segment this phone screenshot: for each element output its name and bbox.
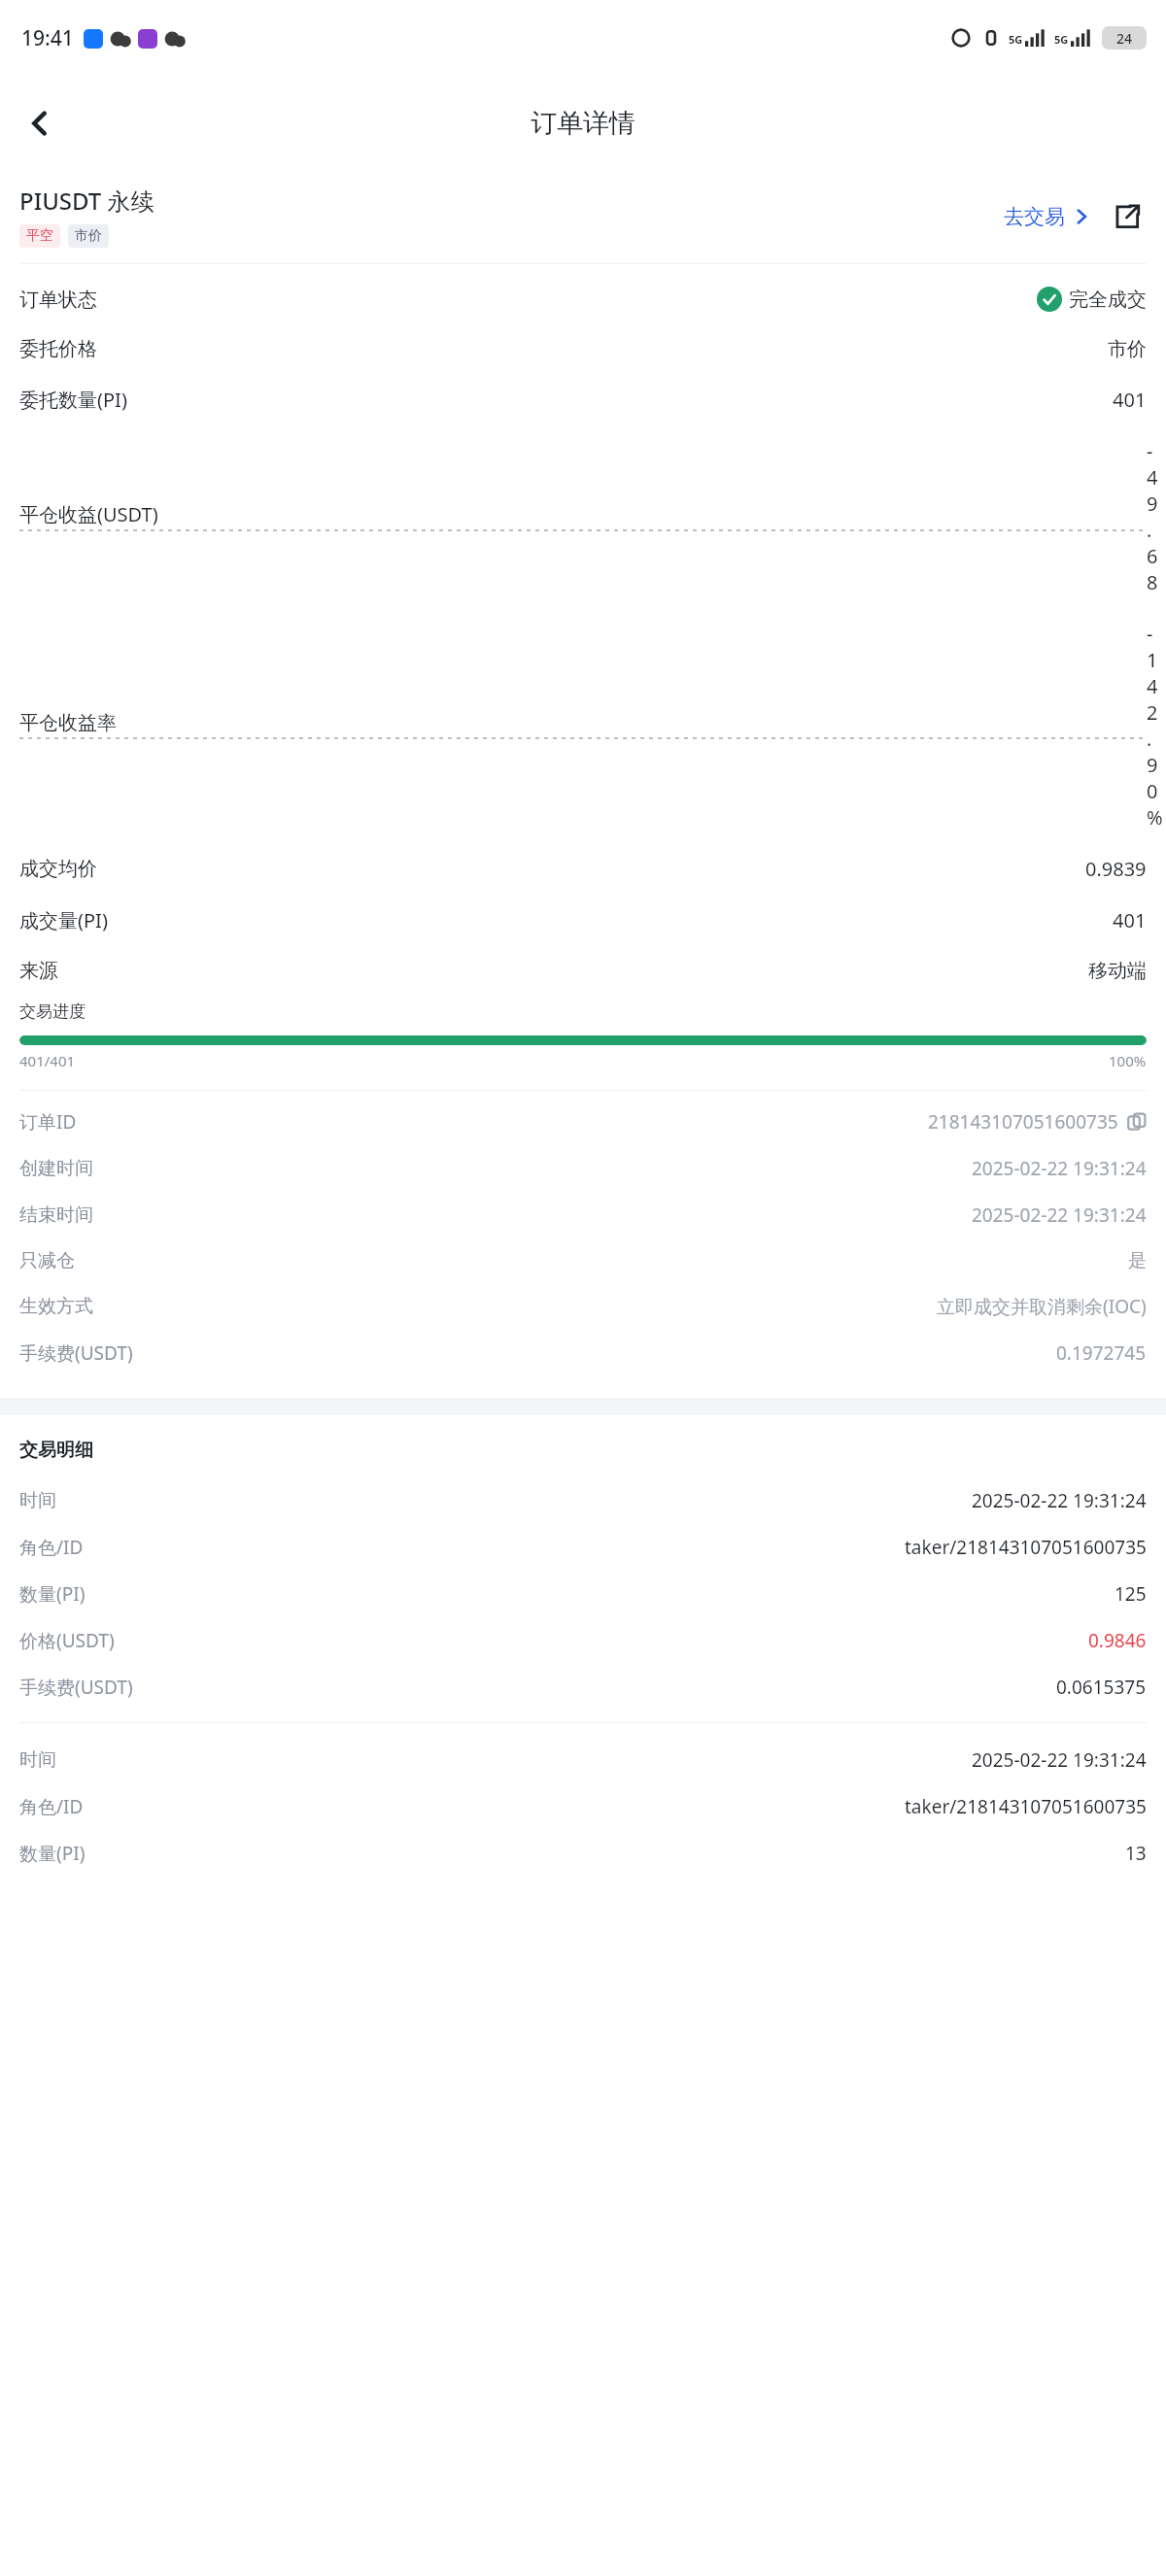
staticText: 委托数量(PI) bbox=[19, 387, 127, 413]
staticText: 401 bbox=[1113, 387, 1147, 413]
staticText: 只减仓 bbox=[19, 1249, 75, 1272]
staticText: 24 bbox=[1116, 29, 1133, 48]
staticText: 立即成交并取消剩余(IOC) bbox=[937, 1294, 1147, 1319]
staticText: 成交均价 bbox=[19, 857, 97, 881]
staticText: 平仓收益(USDT) bbox=[19, 501, 158, 527]
staticText: taker/218143107051600735 bbox=[905, 1794, 1147, 1819]
staticText: 时间 bbox=[19, 1748, 56, 1772]
staticText: 市价 bbox=[75, 227, 102, 245]
staticText: 订单ID bbox=[19, 1109, 77, 1135]
staticText: 19:41 bbox=[21, 24, 74, 52]
staticText: 来源 bbox=[19, 959, 58, 983]
staticText: PIUSDT 永续 bbox=[19, 185, 154, 217]
staticText: 生效方式 bbox=[19, 1295, 93, 1318]
staticText: 去交易 bbox=[1004, 204, 1065, 229]
staticText: 218143107051600735 bbox=[928, 1109, 1118, 1135]
staticText: 角色/ID bbox=[19, 1535, 84, 1560]
staticText: 100% bbox=[1109, 1051, 1147, 1070]
staticText: 结束时间 bbox=[19, 1203, 93, 1227]
staticText: 成交量(PI) bbox=[19, 907, 108, 933]
staticText: 角色/ID bbox=[19, 1794, 84, 1819]
staticText: 2025-02-22 19:31:24 bbox=[972, 1747, 1147, 1773]
staticText: 5G bbox=[1009, 32, 1023, 47]
button[interactable]: 生效方式 bbox=[0, 1283, 1166, 1330]
button[interactable]: 委托数量(PI) bbox=[0, 374, 1166, 425]
staticText: 数量(PI) bbox=[19, 1581, 86, 1607]
button[interactable]: 创建时间 bbox=[0, 1145, 1166, 1192]
button[interactable]: 订单状态 bbox=[0, 274, 1166, 324]
button[interactable]: Share bbox=[1108, 197, 1147, 236]
staticText: 5G bbox=[1054, 32, 1069, 47]
button[interactable]: 角色/ID bbox=[0, 1524, 1166, 1571]
button[interactable]: 只减仓 bbox=[0, 1238, 1166, 1283]
staticText: 创建时间 bbox=[19, 1157, 93, 1180]
button[interactable]: 委托价格 bbox=[0, 324, 1166, 374]
button[interactable]: 平仓收益(USDT) bbox=[0, 425, 1166, 608]
button[interactable]: 平仓收益率 bbox=[0, 608, 1166, 843]
button[interactable]: 价格(USDT) bbox=[0, 1617, 1166, 1664]
staticText: 手续费(USDT) bbox=[19, 1340, 133, 1366]
staticText: 2025-02-22 19:31:24 bbox=[972, 1156, 1147, 1181]
staticText: 401 bbox=[1113, 907, 1147, 933]
button[interactable]: 数量(PI) bbox=[0, 1830, 1166, 1877]
staticText: 订单详情 bbox=[531, 107, 635, 140]
staticText: 交易进度 bbox=[19, 1001, 86, 1022]
button[interactable]: 来源 bbox=[0, 946, 1166, 996]
staticText: 125 bbox=[1115, 1581, 1147, 1607]
button[interactable]: 角色/ID bbox=[0, 1783, 1166, 1830]
staticText: 市价 bbox=[1108, 337, 1147, 361]
button[interactable]: 结束时间 bbox=[0, 1192, 1166, 1238]
button[interactable]: 时间 bbox=[0, 1737, 1166, 1783]
staticText: 平空 bbox=[26, 227, 53, 245]
staticText: 订单状态 bbox=[19, 288, 97, 312]
staticText: 2025-02-22 19:31:24 bbox=[972, 1203, 1147, 1228]
button[interactable]: 订单ID bbox=[0, 1099, 1166, 1145]
button[interactable]: 去交易 bbox=[1004, 198, 1090, 235]
staticText: 2025-02-22 19:31:24 bbox=[972, 1488, 1147, 1513]
staticText: 0.0615375 bbox=[1056, 1675, 1147, 1700]
button[interactable]: 手续费(USDT) bbox=[0, 1330, 1166, 1376]
staticText: 价格(USDT) bbox=[19, 1628, 115, 1653]
staticText: 手续费(USDT) bbox=[19, 1675, 133, 1700]
staticText: 移动端 bbox=[1088, 959, 1147, 983]
staticText: 完全成交 bbox=[1069, 288, 1147, 312]
button[interactable]: 成交均价 bbox=[0, 843, 1166, 895]
button[interactable]: 数量(PI) bbox=[0, 1571, 1166, 1617]
staticText: 委托价格 bbox=[19, 337, 97, 361]
staticText: 交易明细 bbox=[19, 1439, 93, 1462]
button[interactable]: 成交量(PI) bbox=[0, 895, 1166, 946]
staticText: 数量(PI) bbox=[19, 1841, 86, 1866]
button[interactable]: 手续费(USDT) bbox=[0, 1664, 1166, 1711]
staticText: 401/401 bbox=[19, 1051, 76, 1070]
staticText: 平仓收益率 bbox=[19, 711, 117, 735]
staticText: taker/218143107051600735 bbox=[905, 1535, 1147, 1560]
staticText: 13 bbox=[1125, 1841, 1147, 1866]
staticText: 0.9839 bbox=[1085, 856, 1147, 882]
button[interactable]: Back bbox=[12, 95, 68, 152]
staticText: 0.1972745 bbox=[1056, 1340, 1147, 1366]
staticText: 0.9846 bbox=[1088, 1628, 1147, 1653]
staticText: 时间 bbox=[19, 1489, 56, 1512]
staticText: 是 bbox=[1128, 1249, 1147, 1272]
button[interactable]: 时间 bbox=[0, 1477, 1166, 1524]
